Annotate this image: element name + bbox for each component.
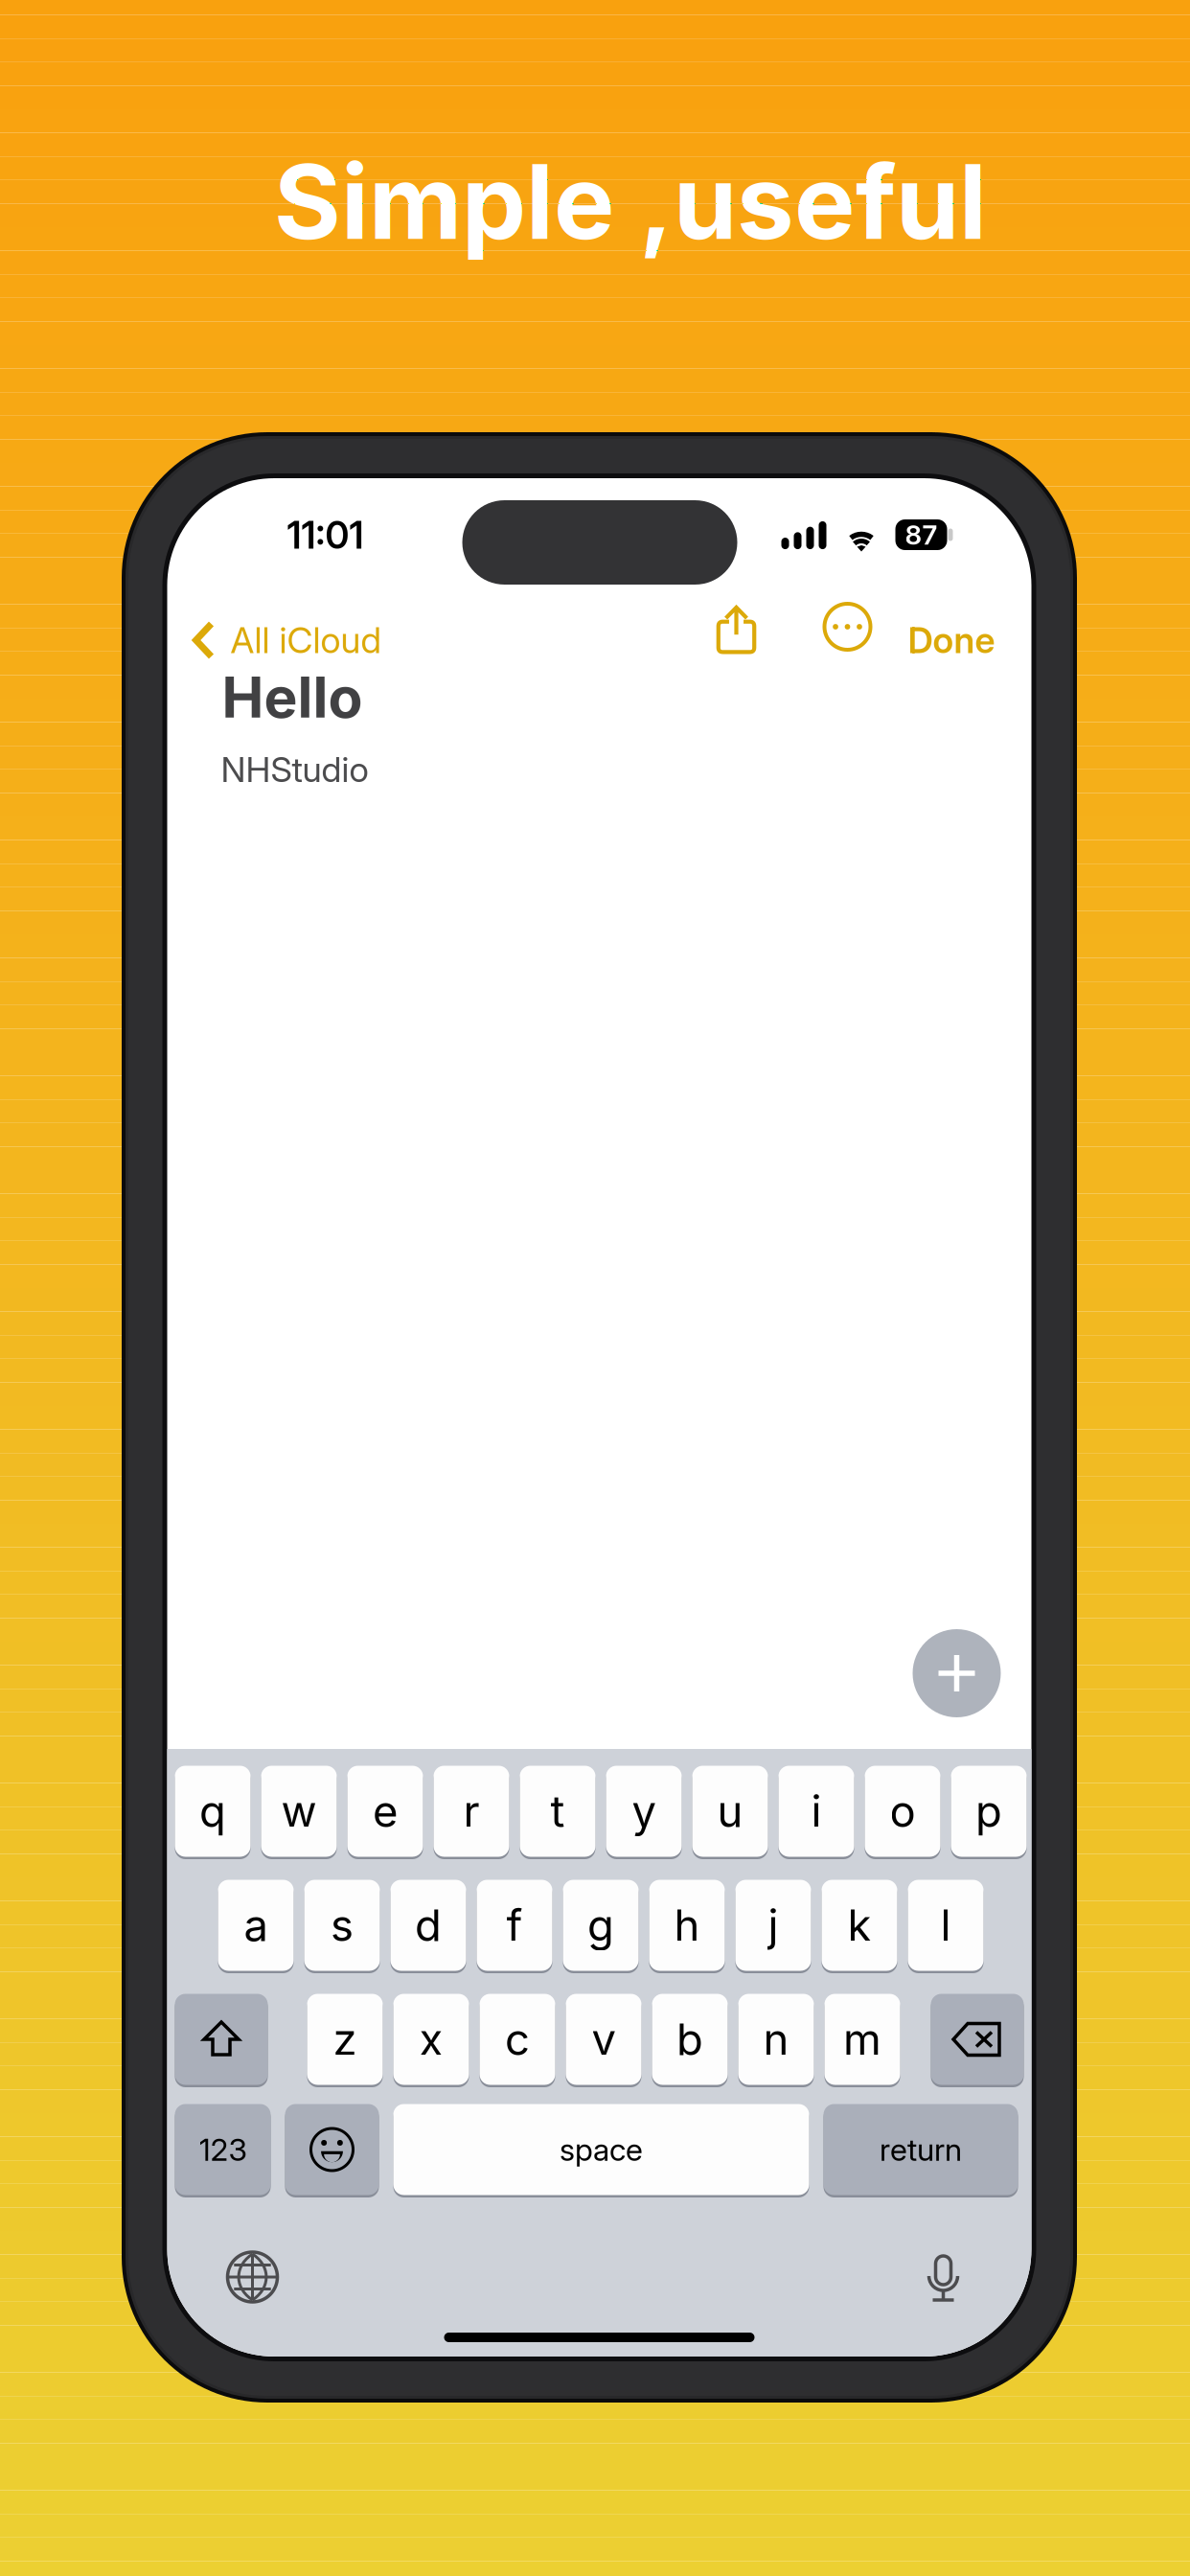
- button[interactable]: b: [652, 1992, 728, 2086]
- button[interactable]: e: [347, 1764, 423, 1858]
- button[interactable]: a: [218, 1878, 294, 1972]
- staticText: z: [333, 2013, 357, 2066]
- staticText: 123: [199, 2131, 247, 2168]
- button[interactable]: p: [951, 1764, 1027, 1858]
- button[interactable]: j: [735, 1878, 811, 1972]
- staticText: h: [674, 1899, 700, 1952]
- button[interactable]: space: [393, 2103, 809, 2196]
- button[interactable]: Shift: [175, 1992, 268, 2086]
- staticText: i: [811, 1785, 822, 1838]
- button[interactable]: q: [175, 1764, 251, 1858]
- staticText: t: [550, 1785, 565, 1838]
- staticText: w: [281, 1785, 317, 1838]
- staticText: k: [847, 1899, 871, 1952]
- staticText: x: [419, 2013, 443, 2066]
- staticText: n: [763, 2013, 789, 2066]
- button[interactable]: c: [480, 1992, 555, 2086]
- staticText: NHStudio: [221, 748, 368, 790]
- staticText: 87: [905, 519, 938, 551]
- button[interactable]: d: [390, 1878, 466, 1972]
- staticText: y: [632, 1785, 656, 1838]
- staticText: v: [592, 2013, 616, 2066]
- button[interactable]: Dictate: [926, 2250, 961, 2304]
- button[interactable]: Add attachment: [913, 1629, 1001, 1717]
- staticText: r: [463, 1785, 480, 1838]
- staticText: 11:01: [287, 513, 364, 558]
- button[interactable]: l: [908, 1878, 984, 1972]
- button[interactable]: Switch keyboard: [228, 2252, 277, 2302]
- button[interactable]: More options: [824, 604, 870, 650]
- button[interactable]: Emoji: [285, 2103, 379, 2196]
- button[interactable]: w: [261, 1764, 337, 1858]
- staticText: d: [415, 1899, 442, 1952]
- staticText: Simple ,useful: [274, 140, 987, 264]
- staticText: Hello: [222, 663, 363, 731]
- staticText: return: [880, 2131, 962, 2168]
- staticText: o: [890, 1785, 915, 1838]
- button[interactable]: z: [307, 1992, 383, 2086]
- staticText: m: [843, 2013, 881, 2066]
- button[interactable]: Done: [908, 612, 995, 668]
- staticText: u: [717, 1785, 743, 1838]
- button[interactable]: u: [692, 1764, 768, 1858]
- button[interactable]: All iCloud: [188, 611, 385, 669]
- button[interactable]: o: [865, 1764, 940, 1858]
- button[interactable]: k: [822, 1878, 897, 1972]
- button[interactable]: r: [434, 1764, 509, 1858]
- button[interactable]: i: [778, 1764, 854, 1858]
- button[interactable]: Delete: [931, 1992, 1024, 2086]
- button[interactable]: h: [649, 1878, 725, 1972]
- button[interactable]: n: [738, 1992, 814, 2086]
- staticText: p: [975, 1785, 1002, 1838]
- staticText: j: [768, 1899, 778, 1952]
- button[interactable]: m: [824, 1992, 900, 2086]
- button[interactable]: y: [606, 1764, 682, 1858]
- staticText: b: [676, 2013, 703, 2066]
- staticText: s: [331, 1899, 354, 1952]
- staticText: g: [587, 1899, 614, 1952]
- staticText: a: [244, 1899, 268, 1952]
- button[interactable]: return: [824, 2103, 1018, 2196]
- button[interactable]: s: [304, 1878, 380, 1972]
- staticText: space: [560, 2131, 643, 2168]
- button[interactable]: Share: [711, 605, 761, 655]
- staticText: e: [373, 1785, 398, 1838]
- staticText: q: [199, 1785, 226, 1838]
- button[interactable]: v: [566, 1992, 641, 2086]
- button[interactable]: 123: [175, 2103, 271, 2196]
- staticText: All iCloud: [230, 619, 381, 662]
- staticText: Done: [908, 619, 995, 662]
- staticText: f: [506, 1899, 523, 1952]
- staticText: l: [940, 1899, 951, 1952]
- button[interactable]: x: [393, 1992, 469, 2086]
- button[interactable]: g: [563, 1878, 639, 1972]
- button[interactable]: t: [520, 1764, 595, 1858]
- staticText: c: [505, 2013, 530, 2066]
- button[interactable]: f: [477, 1878, 552, 1972]
